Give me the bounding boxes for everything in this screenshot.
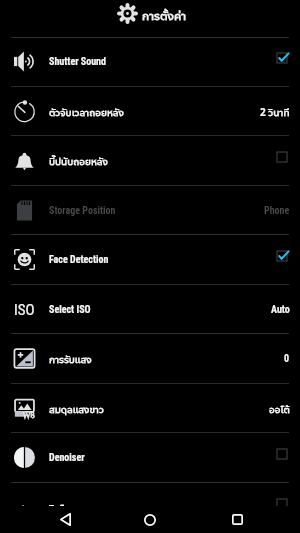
button[interactable]: Face Detection xyxy=(0,235,300,284)
button[interactable]: Denoiser xyxy=(0,433,300,482)
button[interactable]: ISO xyxy=(0,285,300,334)
staticText: Auto xyxy=(271,304,290,316)
staticText: ISO xyxy=(14,301,35,319)
button[interactable]: Shutter Sound xyxy=(0,37,300,86)
staticText: Face Detection xyxy=(49,254,109,266)
staticText: Phone xyxy=(264,205,290,217)
staticText: Select ISO xyxy=(49,304,91,316)
staticText: การตั้งค่า xyxy=(142,7,187,23)
button[interactable]: การรับแสง xyxy=(0,334,300,383)
staticText: 0 xyxy=(284,353,290,365)
button[interactable]: ตัวจับเวลาถอยหลัง xyxy=(0,87,300,136)
staticText: การรับแสง xyxy=(49,352,92,366)
button[interactable]: Home xyxy=(123,506,177,533)
button[interactable]: สมดุลแสงขาว xyxy=(0,384,300,433)
button[interactable]: ฮิสโตแกรม xyxy=(0,483,300,532)
staticText: บี๊ปนับถอยหลัง xyxy=(49,154,108,168)
staticText: ตัวจับเวลาถอยหลัง xyxy=(49,105,124,119)
staticText: ฮิสโตแกรม xyxy=(49,501,93,515)
button[interactable]: Back xyxy=(38,506,92,533)
staticText: Shutter Sound xyxy=(49,56,106,68)
button[interactable]: Recents xyxy=(210,506,264,533)
staticText: Storage Position xyxy=(49,205,116,217)
staticText: Denoiser xyxy=(49,452,85,464)
button[interactable]: บี๊ปนับถอยหลัง xyxy=(0,136,300,185)
staticText: ออโต้ xyxy=(269,402,290,416)
button[interactable]: Storage Position xyxy=(0,186,300,235)
staticText: สมดุลแสงขาว xyxy=(49,402,104,416)
staticText: 2 วินาที xyxy=(260,105,290,119)
